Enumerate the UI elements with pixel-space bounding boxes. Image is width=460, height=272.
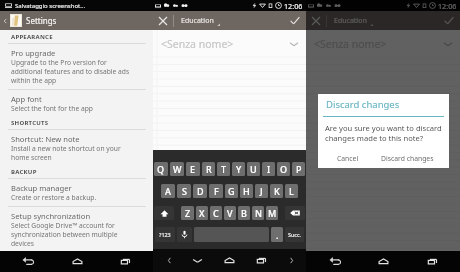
button[interactable]: S [177,184,191,198]
staticText: Select the font for the app [11,104,93,113]
staticText: SHORTCUTS [11,119,49,127]
button[interactable]: Back [0,11,10,30]
button[interactable]: Discard changes [377,151,438,166]
button[interactable]: Z [181,206,194,220]
staticText: Discard changes [381,154,434,163]
button[interactable]: P [292,162,305,176]
button[interactable]: G [225,184,238,198]
button[interactable]: O [277,162,290,176]
staticText: Setup synchronization [11,211,91,221]
button[interactable]: Expand [287,37,301,51]
staticText: App font [11,94,42,104]
staticText: Education [334,16,367,26]
staticText: V [227,207,233,219]
button[interactable]: Close [153,11,173,30]
staticText: O [280,163,288,175]
button[interactable]: Shortcut: New note [0,130,153,166]
button[interactable]: Backup manager [0,179,153,206]
button[interactable]: Delete [285,206,305,220]
staticText: ?123 [159,231,171,238]
button[interactable]: W [170,162,184,176]
staticText: W [173,163,182,175]
button[interactable]: C [210,206,222,220]
button[interactable]: R [202,162,215,176]
staticText: Select Google Drive™ account for synchro… [11,221,118,247]
button[interactable]: Hide keyboard [184,249,210,272]
staticText: S [182,185,187,197]
staticText: Y [236,163,242,175]
button[interactable]: Q [154,162,168,176]
button[interactable]: Previous [158,249,180,272]
button[interactable]: Recents [247,249,275,272]
button[interactable]: Shift [154,206,174,220]
button[interactable]: A [161,184,175,198]
button[interactable]: F [209,184,223,198]
button[interactable]: Cancel [333,151,363,166]
button[interactable]: Save [284,11,306,30]
button[interactable]: N [252,206,264,220]
staticText: L [289,185,294,197]
staticText: <Senza nome> [161,37,234,51]
button[interactable]: H [240,184,253,198]
button[interactable]: Recents [412,251,452,272]
button[interactable]: E [186,162,200,176]
button[interactable]: M [266,206,278,220]
button[interactable]: App font [0,90,153,117]
button[interactable]: Home [57,251,97,272]
staticText: I [267,163,271,175]
staticText: Q [157,163,165,175]
button[interactable]: . [271,227,283,242]
button[interactable]: T [217,162,230,176]
button[interactable]: Save [438,11,460,30]
button[interactable]: V [224,206,236,220]
button[interactable]: I [262,162,275,176]
button[interactable]: Pro upgrade [0,44,153,89]
staticText: G [228,185,235,197]
button[interactable]: L [285,184,298,198]
button[interactable]: Next [280,249,302,272]
staticText: N [255,207,262,219]
staticText: Succ. [288,231,302,238]
button[interactable]: K [270,184,283,198]
staticText: 12:06 [284,1,303,11]
button[interactable]: J [255,184,268,198]
staticText: BACKUP [11,168,37,176]
button[interactable]: D [193,184,207,198]
button[interactable]: Setup synchronization [0,207,153,251]
button[interactable]: Symbols [155,227,175,242]
staticText: Z [185,207,191,219]
staticText: Education [181,16,214,26]
staticText: D [197,185,204,197]
button[interactable]: U [247,162,260,176]
button[interactable]: Close [306,11,326,30]
button[interactable]: Recents [105,251,145,272]
staticText: Cancel [337,154,359,163]
staticText: U [250,163,257,175]
button[interactable]: Home [363,251,403,272]
button[interactable]: Home [215,249,243,272]
staticText: X [199,207,205,219]
button[interactable]: B [238,206,250,220]
staticText: Settings [26,15,57,26]
staticText: Pro upgrade [11,48,56,58]
button[interactable]: Back [315,251,355,272]
staticText: Backup manager [11,183,72,193]
button[interactable]: Voice input [177,227,192,242]
staticText: Salvataggio screenshot... [15,2,86,10]
staticText: <Senza nome> [314,37,387,51]
staticText: T [221,163,227,175]
staticText: F [214,185,219,197]
staticText: P [296,163,302,175]
staticText: H [243,185,250,197]
staticText: Are you sure you want to discard changes… [325,123,442,144]
button[interactable]: X [196,206,208,220]
staticText: Install a new note shortcut on your home… [11,144,121,162]
staticText: A [165,185,171,197]
button[interactable]: Next [285,227,304,242]
button[interactable]: Back [8,251,48,272]
button[interactable]: Education [181,16,220,26]
button[interactable]: Y [232,162,245,176]
staticText: M [268,207,277,219]
button[interactable]: Education [334,16,373,26]
